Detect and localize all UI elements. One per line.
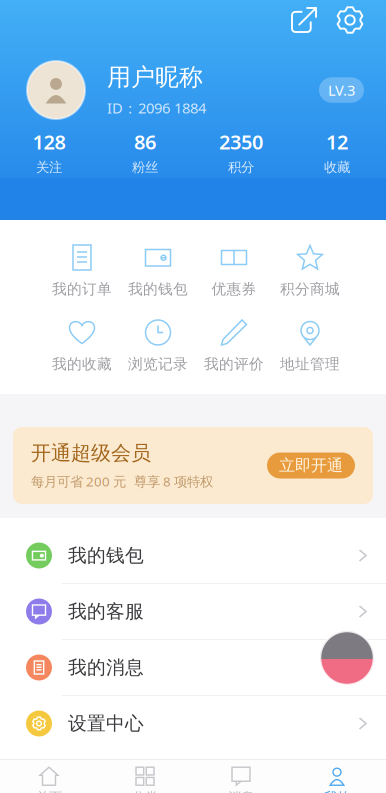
- staticText: 关注: [36, 159, 62, 175]
- button[interactable]: 我的收藏: [44, 309, 120, 384]
- button[interactable]: 浏览记录: [120, 309, 196, 384]
- button[interactable]: 用户昵称: [0, 54, 386, 126]
- button[interactable]: 我的消息: [0, 640, 386, 695]
- staticText: 128: [32, 128, 65, 155]
- staticText: LV.3: [328, 80, 355, 100]
- button[interactable]: Promotion: [320, 631, 374, 685]
- staticText: 收藏: [324, 159, 350, 175]
- staticText: 地址管理: [280, 355, 340, 373]
- staticText: 我的钱包: [128, 280, 188, 298]
- staticText: 我的客服: [68, 600, 144, 623]
- button[interactable]: 积分商城: [272, 234, 348, 309]
- staticText: 优惠券: [211, 280, 256, 298]
- button[interactable]: 首页: [1, 760, 97, 793]
- staticText: 2350: [219, 128, 263, 155]
- button[interactable]: 分类: [97, 760, 193, 793]
- staticText: 86: [134, 128, 156, 155]
- button[interactable]: 我的钱包: [120, 234, 196, 309]
- staticText: 我的消息: [68, 656, 144, 679]
- staticText: 粉丝: [132, 159, 158, 175]
- button[interactable]: Share: [281, 0, 327, 43]
- staticText: 消息: [228, 789, 254, 793]
- staticText: 我的评价: [204, 355, 264, 373]
- staticText: 我的订单: [52, 280, 112, 298]
- button[interactable]: 12: [289, 128, 385, 176]
- button[interactable]: 我的评价: [196, 309, 272, 384]
- button[interactable]: 我的钱包: [0, 528, 386, 583]
- button[interactable]: 128: [1, 128, 97, 176]
- button[interactable]: 我的订单: [44, 234, 120, 309]
- button[interactable]: 我的客服: [0, 584, 386, 639]
- staticText: 每月可省 200 元 尊享 8 项特权: [31, 472, 213, 490]
- staticText: 立即开通: [279, 456, 343, 475]
- staticText: 设置中心: [68, 712, 144, 735]
- staticText: 12: [326, 128, 348, 155]
- staticText: ID：2096 1884: [107, 98, 206, 118]
- staticText: 积分商城: [280, 280, 340, 298]
- button[interactable]: Settings: [327, 0, 373, 43]
- button[interactable]: 2350: [193, 128, 289, 176]
- staticText: 分类: [132, 789, 158, 793]
- staticText: 浏览记录: [128, 355, 188, 373]
- button[interactable]: 地址管理: [272, 309, 348, 384]
- staticText: 积分: [228, 159, 254, 175]
- staticText: 开通超级会员: [31, 441, 151, 465]
- staticText: 用户昵称: [107, 62, 203, 92]
- button[interactable]: 消息: [193, 760, 289, 793]
- button[interactable]: 优惠券: [196, 234, 272, 309]
- button[interactable]: 设置中心: [0, 696, 386, 751]
- staticText: 我的: [324, 789, 350, 793]
- button[interactable]: 开通超级会员: [13, 427, 373, 504]
- staticText: 首页: [36, 789, 62, 793]
- button[interactable]: 86: [97, 128, 193, 176]
- staticText: 我的收藏: [52, 355, 112, 373]
- staticText: 我的钱包: [68, 544, 144, 567]
- button[interactable]: 我的: [289, 760, 385, 793]
